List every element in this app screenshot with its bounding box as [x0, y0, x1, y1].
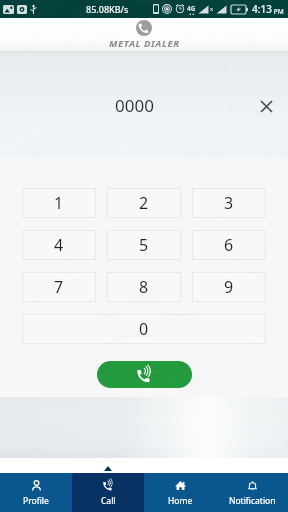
staticText: PM: [272, 7, 284, 16]
staticText: 2: [139, 192, 149, 214]
staticText: 0: [139, 318, 149, 340]
staticText: 6: [224, 234, 234, 256]
staticText: 85.08KB/s: [86, 3, 129, 15]
button[interactable]: 7: [22, 272, 96, 302]
button[interactable]: Call: [97, 361, 192, 388]
staticText: 5: [139, 234, 149, 256]
staticText: 4: [54, 234, 64, 256]
staticText: Profile: [23, 495, 49, 507]
button[interactable]: 0: [22, 314, 266, 344]
button[interactable]: 3: [192, 188, 266, 218]
staticText: 1: [54, 192, 64, 214]
button[interactable]: 1: [22, 188, 96, 218]
button[interactable]: Home: [144, 473, 216, 512]
staticText: 4:13: [252, 2, 272, 16]
staticText: Notification: [229, 495, 276, 507]
staticText: Home: [168, 495, 193, 507]
staticText: 8: [139, 276, 149, 298]
staticText: 9: [224, 276, 234, 298]
button[interactable]: Profile: [0, 473, 72, 512]
button[interactable]: 4: [22, 230, 96, 260]
staticText: METAL DIALER: [109, 37, 180, 50]
button[interactable]: 5: [107, 230, 181, 260]
staticText: 4G: [187, 4, 196, 13]
staticText: Call: [101, 495, 116, 507]
staticText: 0000: [115, 94, 154, 117]
staticText: 3: [224, 192, 234, 214]
button[interactable]: Notification: [216, 473, 288, 512]
button[interactable]: 9: [192, 272, 266, 302]
staticText: 7: [54, 276, 64, 298]
button[interactable]: Call: [72, 473, 144, 512]
button[interactable]: 8: [107, 272, 181, 302]
staticText: x: [210, 5, 214, 13]
button[interactable]: 6: [192, 230, 266, 260]
button[interactable]: 2: [107, 188, 181, 218]
button[interactable]: Clear: [252, 92, 280, 120]
